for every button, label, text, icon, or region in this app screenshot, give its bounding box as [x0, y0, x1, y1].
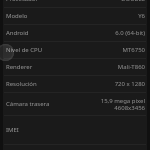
staticText: 15,9 mega pixel 4608x3456 [100, 97, 145, 112]
button[interactable]: Procesador [3, 0, 147, 8]
staticText: Y6 [138, 12, 145, 20]
button[interactable]: Resolución [3, 76, 147, 93]
staticText: Resolución [6, 80, 37, 88]
staticText: Nivel de CPU [6, 46, 43, 54]
button[interactable]: Android [3, 25, 147, 42]
staticText: 720 x 1280 [114, 80, 145, 88]
staticText: MT6750 [122, 46, 145, 54]
staticText: Cámara trasera [6, 100, 50, 108]
staticText: 6.0 (64-bit) [115, 29, 145, 37]
button[interactable]: Nivel de CPU [3, 42, 147, 59]
button[interactable]: Renderer [3, 59, 147, 76]
staticText: Mali-T860 [117, 63, 145, 71]
staticText: DOUBLE [121, 0, 145, 3]
staticText: Android [6, 29, 29, 37]
button[interactable]: Modelo [3, 8, 147, 25]
staticText: Modelo [6, 12, 28, 20]
staticText: IMEI [6, 126, 19, 134]
staticText: Procesador [6, 0, 38, 3]
button[interactable]: IMEI [3, 116, 147, 145]
button[interactable]: Cámara trasera [3, 93, 147, 116]
staticText: Renderer [6, 63, 33, 71]
